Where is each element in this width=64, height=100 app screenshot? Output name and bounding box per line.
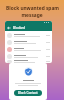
button[interactable] bbox=[5, 60, 52, 63]
button[interactable] bbox=[5, 53, 52, 60]
button[interactable] bbox=[5, 46, 52, 53]
staticText: Block unwanted spam bbox=[6, 5, 59, 12]
button[interactable]: Block Contact bbox=[14, 90, 42, 96]
staticText: message bbox=[21, 12, 43, 19]
button[interactable] bbox=[5, 32, 52, 39]
staticText: Block Contact bbox=[18, 91, 38, 95]
other: Back bbox=[7, 26, 11, 30]
staticText: Blocked bbox=[13, 26, 26, 30]
button[interactable] bbox=[5, 39, 52, 46]
